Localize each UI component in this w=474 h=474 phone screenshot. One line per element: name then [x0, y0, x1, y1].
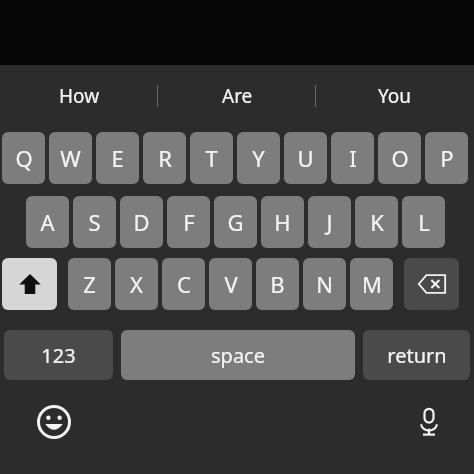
button[interactable]: You	[316, 65, 474, 127]
button[interactable]: Q	[2, 132, 45, 184]
button[interactable]: Backspace	[404, 258, 459, 310]
staticText: D	[133, 207, 150, 237]
button[interactable]: A	[26, 196, 69, 248]
staticText: You	[378, 83, 412, 109]
button[interactable]: Are	[158, 65, 316, 127]
button[interactable]: K	[355, 196, 398, 248]
button[interactable]: Voice input	[408, 401, 450, 443]
button[interactable]: W	[49, 132, 92, 184]
staticText: return	[387, 342, 447, 369]
button[interactable]: H	[261, 196, 304, 248]
staticText: L	[418, 207, 430, 237]
staticText: Q	[15, 143, 33, 173]
button[interactable]: M	[350, 258, 393, 310]
staticText: W	[60, 143, 81, 173]
staticText: 123	[41, 342, 76, 369]
button[interactable]: How	[0, 65, 158, 127]
button[interactable]: 123	[4, 330, 113, 380]
staticText: B	[270, 269, 285, 299]
staticText: P	[440, 143, 454, 173]
staticText: G	[227, 207, 244, 237]
staticText: A	[40, 207, 55, 237]
button[interactable]: Y	[237, 132, 280, 184]
staticText: H	[274, 207, 291, 237]
staticText: Are	[222, 83, 253, 109]
staticText: E	[111, 143, 124, 173]
button[interactable]: I	[331, 132, 374, 184]
button[interactable]: J	[308, 196, 351, 248]
button[interactable]: L	[402, 196, 445, 248]
staticText: U	[297, 143, 314, 173]
button[interactable]: U	[284, 132, 327, 184]
button[interactable]: P	[425, 132, 468, 184]
button[interactable]: B	[256, 258, 299, 310]
button[interactable]: F	[167, 196, 210, 248]
button[interactable]: Z	[68, 258, 111, 310]
button[interactable]: return	[363, 330, 470, 380]
button[interactable]: S	[73, 196, 116, 248]
staticText: C	[177, 269, 191, 299]
staticText: Y	[252, 143, 265, 173]
staticText: space	[211, 342, 265, 369]
staticText: Z	[83, 269, 96, 299]
button[interactable]: C	[162, 258, 205, 310]
button[interactable]: space	[121, 330, 355, 380]
button[interactable]: E	[96, 132, 139, 184]
staticText: K	[370, 207, 384, 237]
staticText: R	[158, 143, 172, 173]
button[interactable]: O	[378, 132, 421, 184]
button[interactable]: Emoji	[33, 401, 75, 443]
staticText: M	[362, 269, 382, 299]
staticText: I	[349, 143, 357, 173]
staticText: N	[316, 269, 333, 299]
staticText: V	[224, 269, 238, 299]
button[interactable]: T	[190, 132, 233, 184]
staticText: O	[391, 143, 409, 173]
button[interactable]: V	[209, 258, 252, 310]
button[interactable]: R	[143, 132, 186, 184]
staticText: S	[88, 207, 101, 237]
button[interactable]: X	[115, 258, 158, 310]
button[interactable]: N	[303, 258, 346, 310]
staticText: F	[183, 207, 195, 237]
button[interactable]: G	[214, 196, 257, 248]
staticText: X	[130, 269, 143, 299]
button[interactable]: Shift	[2, 258, 57, 310]
button[interactable]: D	[120, 196, 163, 248]
staticText: How	[59, 83, 100, 109]
staticText: J	[326, 207, 333, 237]
staticText: T	[205, 143, 218, 173]
